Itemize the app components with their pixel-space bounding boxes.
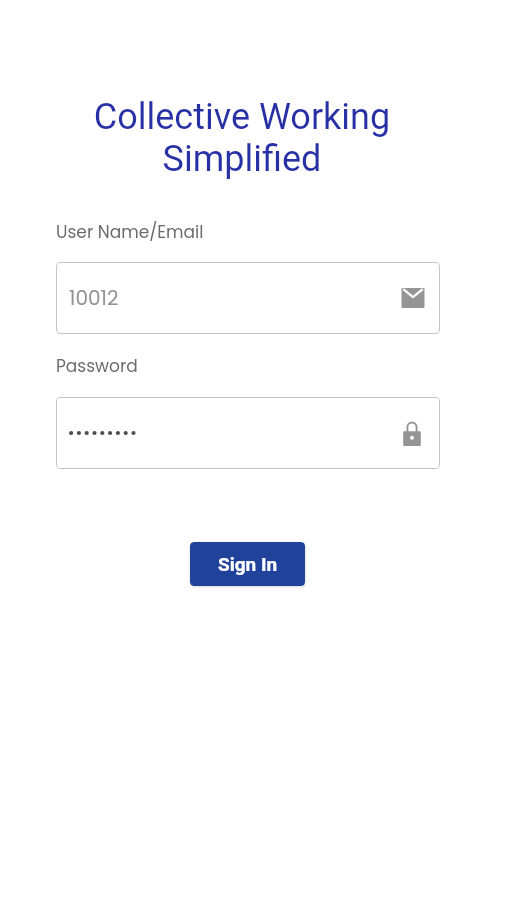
button[interactable]: Password <box>56 397 440 469</box>
button[interactable]: User Name or Email <box>56 262 440 334</box>
other: Password <box>399 420 425 446</box>
staticText: Collective Working Simplified <box>0 96 495 180</box>
other: Email <box>401 286 425 310</box>
button[interactable]: Sign In <box>190 542 305 586</box>
staticText: User Name/Email <box>56 220 204 244</box>
staticText: Password <box>56 354 138 378</box>
staticText: 10012 <box>69 284 401 312</box>
staticText: Sign In <box>218 553 278 575</box>
